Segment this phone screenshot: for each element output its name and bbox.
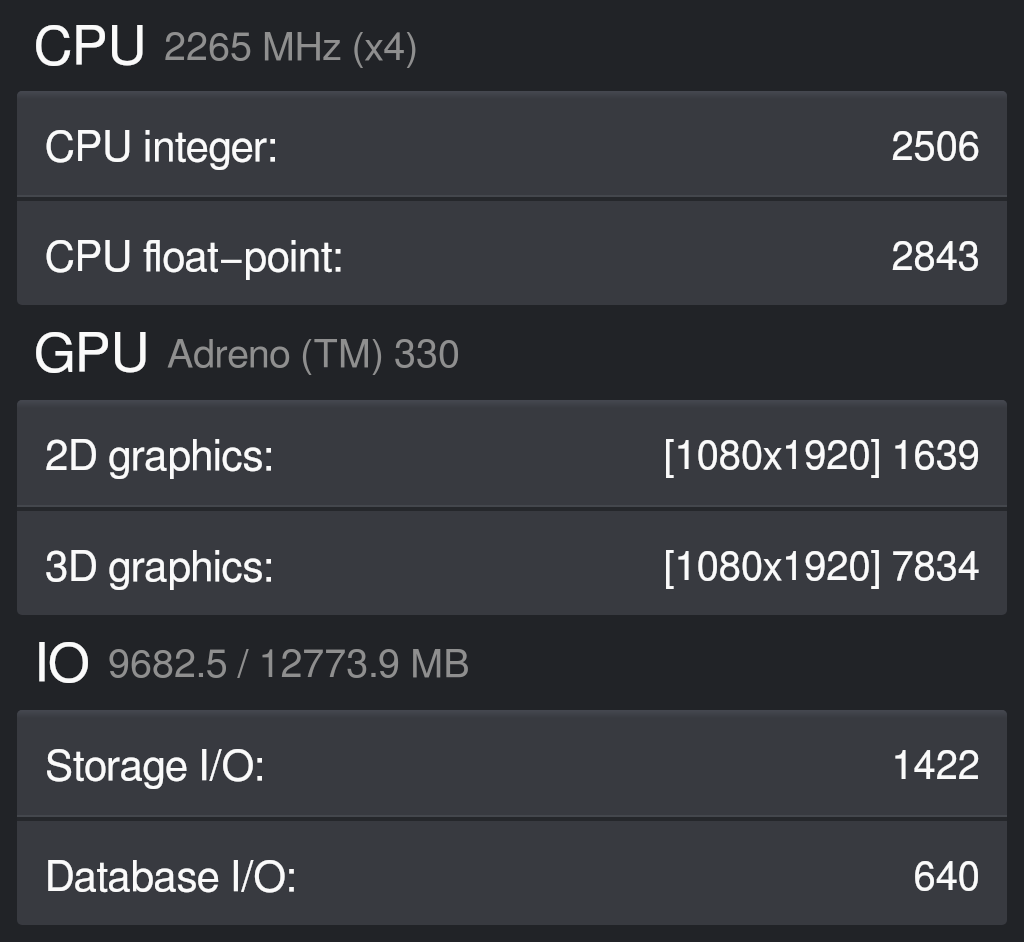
staticText: CPU bbox=[34, 21, 147, 75]
staticText: 9682.5 / 12773.9 MB bbox=[108, 645, 470, 685]
button[interactable]: 2D graphics: bbox=[17, 400, 1007, 505]
staticText: Database I/O: bbox=[45, 857, 297, 899]
staticText: Storage I/O: bbox=[45, 746, 265, 788]
button[interactable]: Database I/O: bbox=[17, 821, 1007, 925]
button[interactable]: CPU bbox=[0, 0, 1024, 91]
button[interactable]: 3D graphics: bbox=[17, 511, 1007, 615]
staticText: 640 bbox=[913, 858, 980, 898]
staticText: [1080x1920] 7834 bbox=[663, 548, 980, 588]
staticText: Adreno (TM) 330 bbox=[167, 335, 460, 375]
button[interactable]: CPU float−point: bbox=[17, 201, 1007, 305]
staticText: IO bbox=[34, 638, 91, 692]
button[interactable]: Storage I/O: bbox=[17, 710, 1007, 815]
staticText: CPU integer: bbox=[45, 127, 278, 169]
staticText: 1422 bbox=[891, 747, 980, 787]
staticText: GPU bbox=[34, 328, 150, 382]
button[interactable]: IO bbox=[0, 615, 1024, 710]
staticText: [1080x1920] 1639 bbox=[663, 437, 980, 477]
staticText: 2506 bbox=[891, 128, 980, 168]
staticText: 3D graphics: bbox=[45, 547, 274, 589]
staticText: 2265 MHz (x4) bbox=[164, 28, 419, 68]
button[interactable]: GPU bbox=[0, 305, 1024, 400]
staticText: 2843 bbox=[891, 238, 980, 278]
staticText: CPU float−point: bbox=[45, 237, 343, 279]
staticText: 2D graphics: bbox=[45, 436, 274, 478]
button[interactable]: CPU integer: bbox=[17, 91, 1007, 195]
